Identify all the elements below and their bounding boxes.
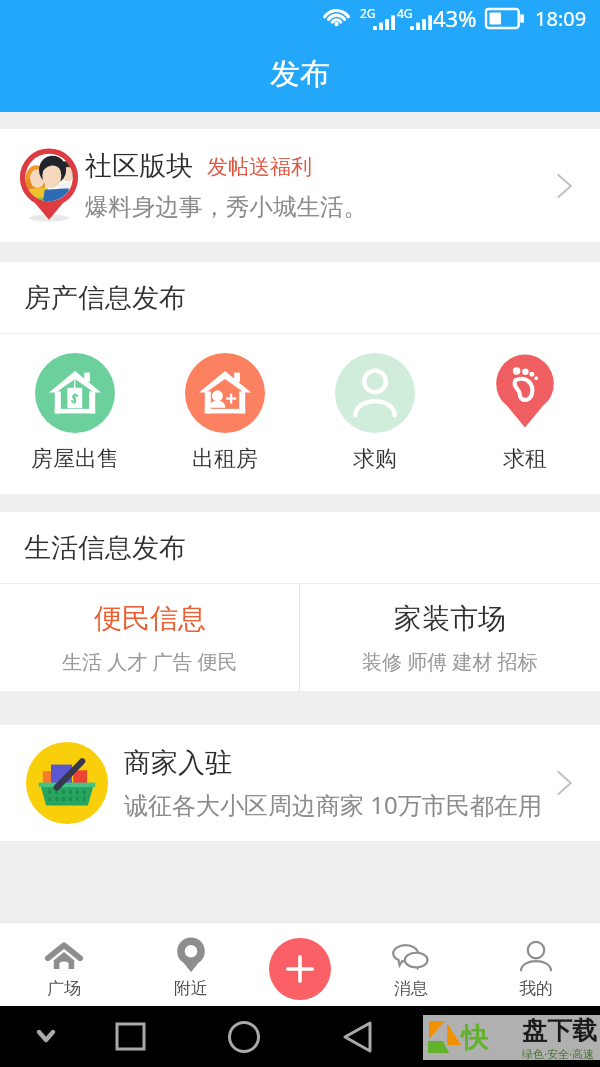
staticText: 18:09 bbox=[535, 5, 587, 32]
button[interactable]: 广场 bbox=[10, 922, 118, 1006]
staticText: 发帖送福利 bbox=[207, 154, 312, 180]
staticText: 房产信息发布 bbox=[24, 281, 186, 315]
button[interactable]: 附近 bbox=[137, 922, 245, 1006]
staticText: 我的 bbox=[519, 978, 553, 999]
staticText: 4G bbox=[397, 5, 413, 21]
button[interactable]: 求租 bbox=[450, 334, 600, 494]
button[interactable]: 家装市场 bbox=[300, 584, 600, 691]
button[interactable]: 消息 bbox=[357, 922, 465, 1006]
staticText: 家装市场 bbox=[394, 601, 506, 636]
staticText: 装修 师傅 建材 招标 bbox=[362, 648, 538, 675]
button[interactable]: 发布 bbox=[269, 938, 331, 1000]
staticText: 消息 bbox=[394, 978, 428, 999]
button[interactable]: 我的 bbox=[482, 922, 590, 1006]
button[interactable]: 求购 bbox=[300, 334, 450, 494]
staticText: 诚征各大小区周边商家 10万市民都在用 bbox=[124, 788, 542, 821]
staticText: 生活信息发布 bbox=[24, 531, 186, 565]
button[interactable]: 社区版块 bbox=[0, 129, 600, 242]
staticText: 生活 人才 广告 便民 bbox=[62, 648, 238, 675]
staticText: 求购 bbox=[353, 445, 397, 473]
staticText: 绿色·安全·高速 bbox=[522, 1046, 594, 1060]
staticText: 社区版块 bbox=[85, 149, 193, 183]
staticText: 2G bbox=[360, 5, 376, 21]
staticText: 发布 bbox=[270, 55, 330, 93]
button[interactable]: 房屋出售 bbox=[0, 334, 150, 494]
staticText: 附近 bbox=[174, 978, 208, 999]
staticText: 爆料身边事，秀小城生活。 bbox=[85, 192, 367, 222]
staticText: 盘下载 bbox=[522, 1015, 597, 1046]
staticText: 出租房 bbox=[192, 445, 258, 473]
button[interactable]: 便民信息 bbox=[0, 584, 299, 691]
button[interactable]: 出租房 bbox=[150, 334, 300, 494]
staticText: 房屋出售 bbox=[31, 445, 119, 473]
staticText: 便民信息 bbox=[94, 601, 206, 636]
staticText: 广场 bbox=[47, 978, 81, 999]
staticText: 快 bbox=[461, 1021, 488, 1055]
staticText: 求租 bbox=[503, 445, 547, 473]
staticText: 43% bbox=[433, 3, 477, 33]
staticText: 商家入驻 bbox=[124, 746, 232, 780]
button[interactable]: 商家入驻 bbox=[0, 725, 600, 841]
